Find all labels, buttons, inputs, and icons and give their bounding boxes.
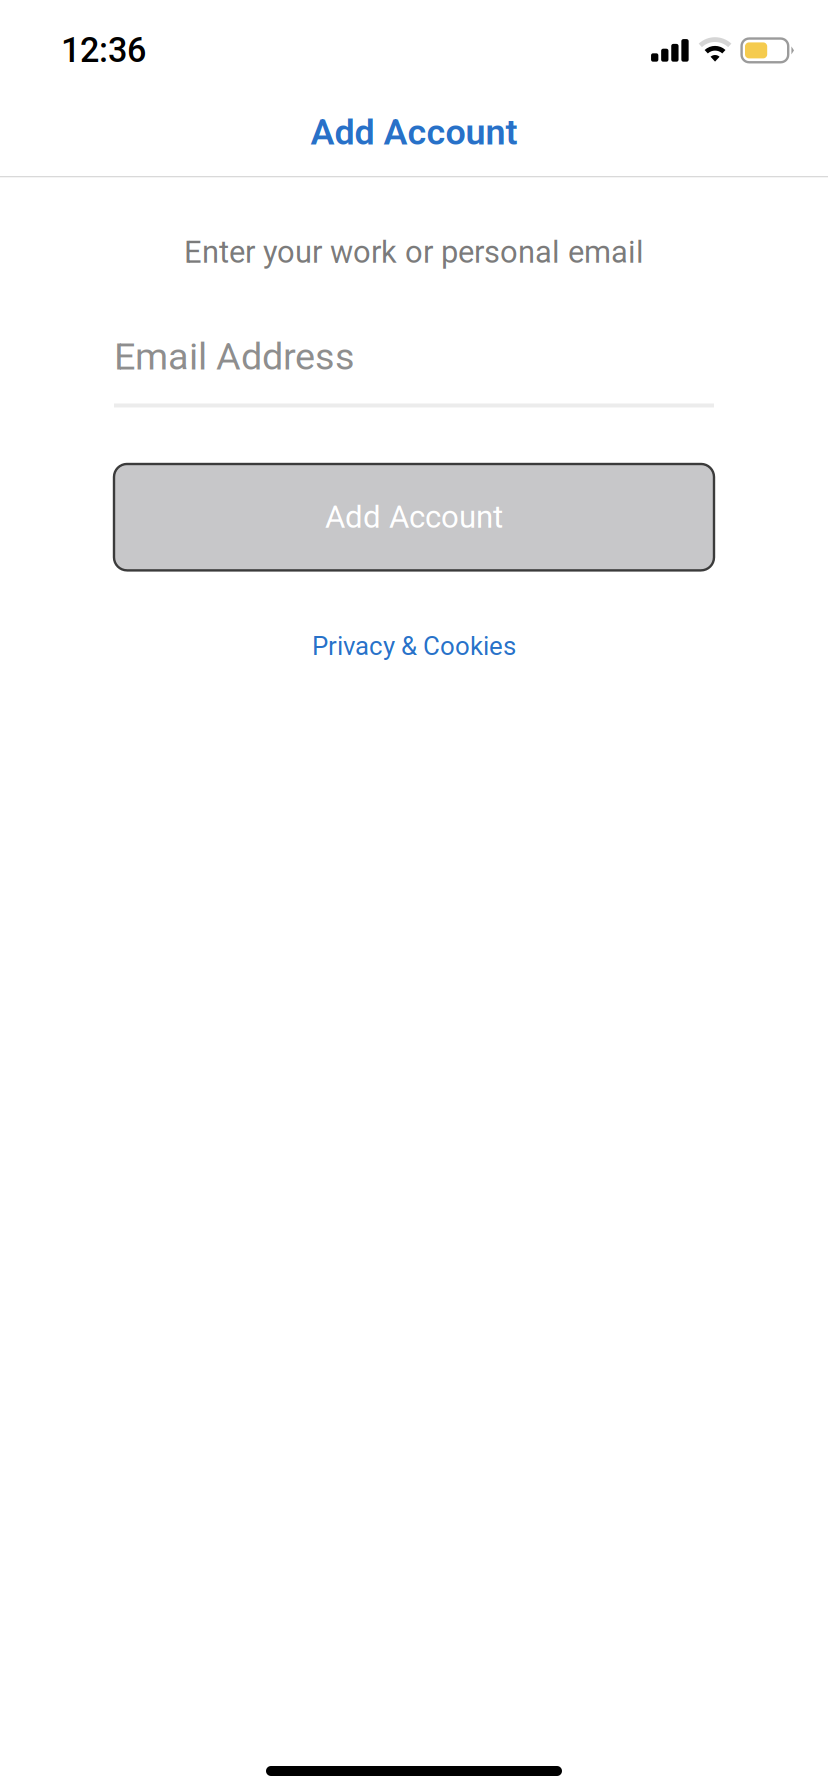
staticText: Enter your work or personal email <box>184 234 644 270</box>
staticText: Privacy & Cookies <box>312 631 516 661</box>
button[interactable]: Privacy & Cookies <box>114 619 714 673</box>
staticText: 12:36 <box>61 30 146 70</box>
button[interactable]: Add Account <box>0 93 828 176</box>
button[interactable]: Add Account <box>114 464 714 570</box>
staticText: Add Account <box>310 111 517 153</box>
staticText: Email Address <box>114 334 355 379</box>
staticText: Add Account <box>325 499 503 535</box>
